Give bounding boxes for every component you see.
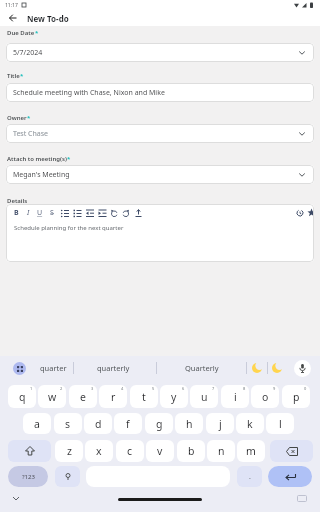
staticText: 5/7/2024 xyxy=(13,48,43,58)
button[interactable]: B xyxy=(6,204,314,262)
staticText: 7 xyxy=(212,386,215,391)
button[interactable]: ?123 xyxy=(8,466,48,487)
button[interactable]: m xyxy=(237,440,265,462)
staticText: i xyxy=(234,390,237,404)
staticText: Attach to meeting(s) xyxy=(7,155,67,163)
button[interactable]: t xyxy=(130,385,158,408)
staticText: 6 xyxy=(182,386,185,391)
staticText: Quarterly xyxy=(185,363,219,373)
button[interactable]: d xyxy=(84,413,112,434)
button[interactable]: a xyxy=(23,413,51,434)
button[interactable]: Test Chase xyxy=(6,124,314,143)
button[interactable]: h xyxy=(175,413,203,434)
button[interactable]: f xyxy=(114,413,142,434)
button[interactable]: c xyxy=(116,440,144,462)
button[interactable]: b xyxy=(177,440,205,462)
button[interactable]: o xyxy=(251,385,279,408)
button[interactable]: z xyxy=(55,440,83,462)
staticText: s xyxy=(65,417,71,431)
button[interactable]: . xyxy=(237,466,262,487)
button[interactable] xyxy=(55,466,80,487)
staticText: U xyxy=(37,208,43,218)
staticText: r xyxy=(111,390,116,404)
button[interactable]: Quarterly xyxy=(170,358,234,378)
button[interactable]: l xyxy=(266,413,294,434)
staticText: 1 xyxy=(30,386,33,391)
staticText: 11:17 xyxy=(5,2,18,9)
button[interactable]: n xyxy=(207,440,235,462)
staticText: l xyxy=(279,417,282,431)
button[interactable]: u xyxy=(190,385,218,408)
staticText: k xyxy=(247,417,253,431)
button[interactable]: i xyxy=(221,385,249,408)
staticText: ?123 xyxy=(22,473,35,481)
staticText: e xyxy=(80,390,86,404)
staticText: v xyxy=(157,444,163,458)
button[interactable] xyxy=(307,208,314,217)
staticText: 9 xyxy=(273,386,276,391)
staticText: quarterly xyxy=(97,363,130,373)
button[interactable] xyxy=(296,209,304,217)
staticText: Schedule meeting with Chase, Nixon and M… xyxy=(13,88,165,98)
staticText: q xyxy=(19,390,26,404)
button[interactable] xyxy=(251,362,263,374)
staticText: h xyxy=(186,417,193,431)
staticText: z xyxy=(67,444,72,458)
button[interactable] xyxy=(271,362,283,374)
staticText: g xyxy=(156,417,163,431)
button[interactable] xyxy=(13,362,26,375)
staticText: . xyxy=(249,472,251,482)
staticText: y xyxy=(171,390,177,404)
staticText: S xyxy=(50,208,54,218)
staticText: 5 xyxy=(152,386,155,391)
button[interactable]: quarterly xyxy=(84,358,142,378)
staticText: I xyxy=(27,208,30,218)
staticText: x xyxy=(96,444,102,458)
button[interactable]: k xyxy=(236,413,264,434)
button[interactable]: p xyxy=(282,385,310,408)
button[interactable]: Megan's Meeting xyxy=(6,165,314,184)
staticText: New To-do xyxy=(27,13,69,24)
staticText: B xyxy=(14,208,19,218)
button[interactable]: v xyxy=(146,440,174,462)
button[interactable] xyxy=(268,466,312,487)
button[interactable]: w xyxy=(38,385,66,408)
staticText: Megan's Meeting xyxy=(13,170,70,180)
button[interactable]: e xyxy=(69,385,97,408)
button[interactable]: quarter xyxy=(30,358,76,378)
button[interactable] xyxy=(12,496,20,501)
staticText: p xyxy=(293,390,300,404)
button[interactable]: g xyxy=(145,413,173,434)
staticText: 0 xyxy=(304,386,307,391)
staticText: 3 xyxy=(91,386,94,391)
button[interactable]: r xyxy=(99,385,127,408)
button[interactable]: 5/7/2024 xyxy=(6,43,314,62)
button[interactable] xyxy=(270,440,313,462)
staticText: j xyxy=(219,417,222,431)
button[interactable]: q xyxy=(8,385,36,408)
button[interactable] xyxy=(9,14,17,22)
staticText: Title xyxy=(7,72,20,80)
staticText: t xyxy=(142,390,146,404)
staticText: Owner xyxy=(7,114,27,122)
button[interactable]: Schedule meeting with Chase, Nixon and M… xyxy=(6,83,314,102)
staticText: w xyxy=(48,390,57,404)
staticText: * xyxy=(20,72,24,80)
staticText: Schedule planning for the next quarter xyxy=(14,224,124,232)
button[interactable] xyxy=(297,495,307,503)
staticText: Test Chase xyxy=(13,129,49,139)
button[interactable]: y xyxy=(160,385,188,408)
staticText: f xyxy=(126,417,130,431)
staticText: b xyxy=(188,444,195,458)
staticText: d xyxy=(95,417,102,431)
button[interactable] xyxy=(294,360,311,377)
staticText: 8 xyxy=(243,386,246,391)
staticText: u xyxy=(201,390,208,404)
staticText: * xyxy=(27,114,31,122)
button[interactable]: s xyxy=(54,413,82,434)
button[interactable]: x xyxy=(85,440,113,462)
button[interactable] xyxy=(8,440,51,462)
staticText: * xyxy=(67,155,71,163)
button[interactable]: j xyxy=(206,413,234,434)
